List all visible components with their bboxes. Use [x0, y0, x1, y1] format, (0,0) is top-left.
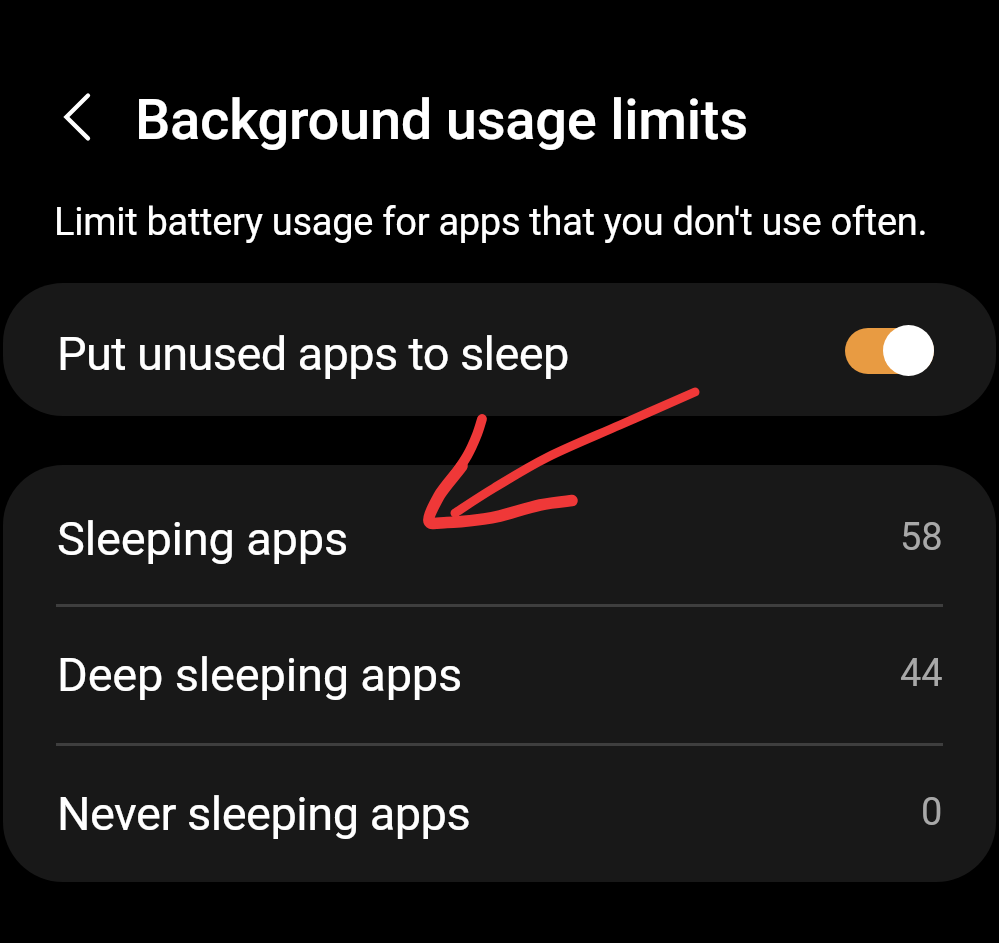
- staticText: Sleeping apps: [57, 511, 349, 566]
- button[interactable]: Sleeping apps: [3, 465, 996, 605]
- staticText: 58: [900, 515, 943, 560]
- button[interactable]: Put unused apps to sleep, on: [845, 325, 934, 376]
- staticText: 0: [921, 790, 943, 835]
- button[interactable]: Deep sleeping apps: [3, 602, 996, 741]
- button[interactable]: Never sleeping apps: [3, 741, 996, 880]
- button[interactable]: Navigate back: [42, 81, 114, 153]
- staticText: Limit battery usage for apps that you do…: [54, 200, 928, 245]
- staticText: Never sleeping apps: [57, 786, 471, 841]
- button[interactable]: Put unused apps to sleep: [3, 283, 996, 416]
- staticText: 44: [900, 651, 943, 696]
- staticText: Deep sleeping apps: [57, 647, 463, 702]
- staticText: Put unused apps to sleep: [57, 326, 569, 381]
- staticText: Background usage limits: [135, 87, 748, 153]
